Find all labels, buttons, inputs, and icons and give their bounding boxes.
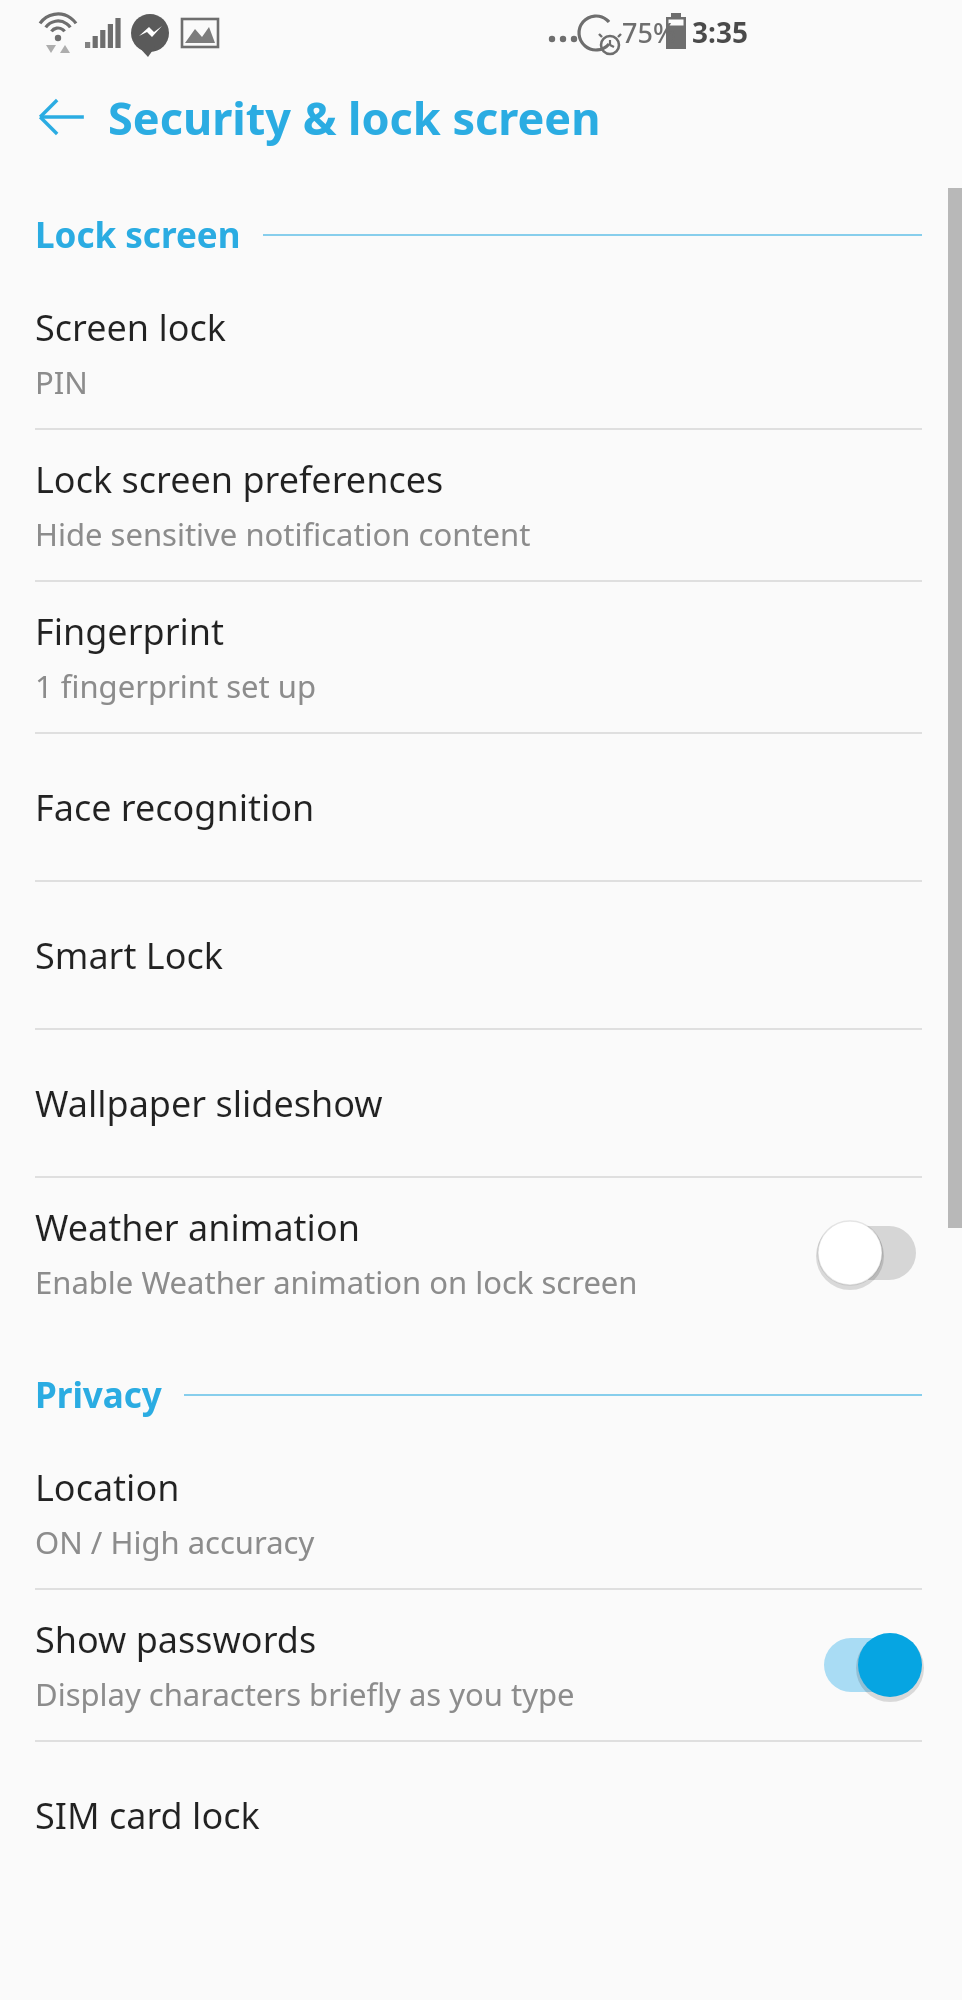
staticText: Lock screen: [35, 211, 241, 259]
staticText: Privacy: [35, 1371, 162, 1419]
staticText: Screen lock: [35, 303, 226, 352]
staticText: Location: [35, 1463, 180, 1512]
staticText: Face recognition: [35, 783, 315, 832]
button[interactable]: Show passwords: [0, 1590, 962, 1740]
staticText: PIN: [35, 361, 88, 403]
button[interactable]: Wallpaper slideshow: [0, 1030, 962, 1176]
staticText: Enable Weather animation on lock screen: [35, 1261, 638, 1303]
staticText: Fingerprint: [35, 607, 225, 656]
staticText: Weather animation: [35, 1203, 360, 1252]
button[interactable]: Weather animation: [0, 1178, 962, 1328]
staticText: Security & lock screen: [108, 87, 601, 148]
button[interactable]: Toggle off: [818, 1220, 922, 1286]
staticText: Lock screen preferences: [35, 455, 444, 504]
button[interactable]: SIM card lock: [0, 1742, 962, 1888]
staticText: Hide sensitive notification content: [35, 513, 531, 555]
staticText: Display characters briefly as you type: [35, 1673, 575, 1715]
staticText: ON / High accuracy: [35, 1521, 315, 1563]
button[interactable]: Smart Lock: [0, 882, 962, 1028]
staticText: 1 fingerprint set up: [35, 665, 317, 707]
button[interactable]: Lock screen preferences: [0, 430, 962, 580]
staticText: 3:35: [692, 13, 748, 51]
staticText: Show passwords: [35, 1615, 317, 1664]
button[interactable]: Toggle on: [818, 1632, 922, 1698]
staticText: SIM card lock: [35, 1791, 260, 1840]
button[interactable]: Screen lock: [0, 278, 962, 428]
button[interactable]: Face recognition: [0, 734, 962, 880]
staticText: Wallpaper slideshow: [35, 1079, 383, 1128]
staticText: 75%: [622, 14, 676, 51]
button[interactable]: Fingerprint: [0, 582, 962, 732]
button[interactable]: Location: [0, 1438, 962, 1588]
button[interactable]: Back: [26, 81, 98, 153]
staticText: Smart Lock: [35, 931, 223, 980]
